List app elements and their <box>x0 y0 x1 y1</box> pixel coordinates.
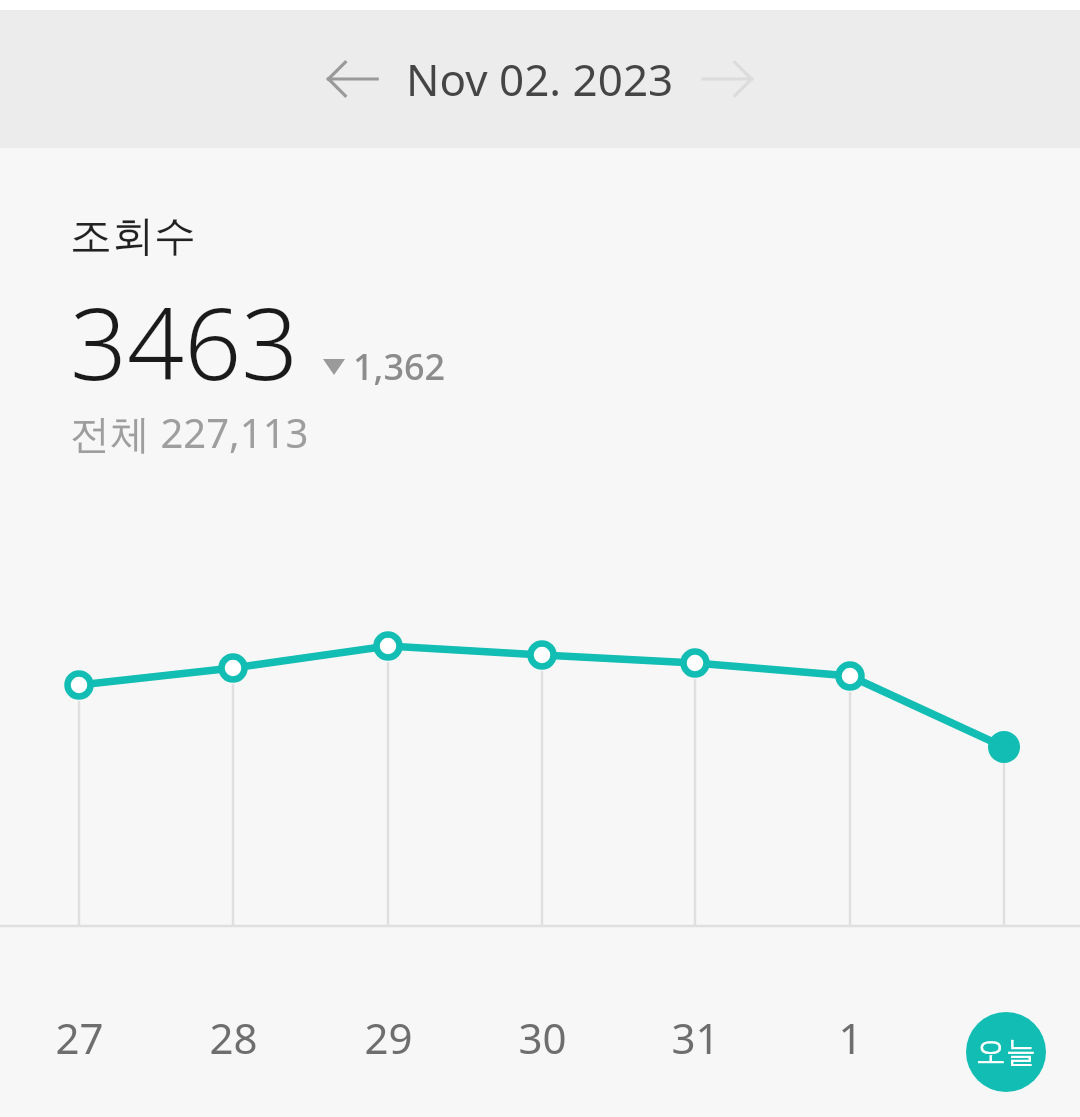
button[interactable]: Previous day <box>312 39 392 119</box>
button[interactable]: Next day <box>688 39 768 119</box>
button[interactable]: 27 <box>24 1002 134 1072</box>
button[interactable]: 오늘 <box>966 1012 1046 1092</box>
button[interactable]: 1 <box>795 1002 905 1072</box>
staticText: 1 <box>838 1009 863 1066</box>
staticText: Nov 02. 2023 <box>406 49 674 109</box>
staticText: 3463 <box>70 273 299 409</box>
staticText: 28 <box>209 1009 258 1066</box>
staticText: 27 <box>55 1009 104 1066</box>
button[interactable]: 30 <box>487 1002 597 1072</box>
button[interactable]: 31 <box>640 1002 750 1072</box>
button[interactable]: Nov 02. 2023 <box>406 49 674 109</box>
staticText: 29 <box>364 1009 413 1066</box>
button[interactable]: 28 <box>178 1002 288 1072</box>
staticText: 31 <box>671 1009 720 1066</box>
staticText: 1,362 <box>353 342 446 391</box>
staticText: 전체 227,113 <box>70 405 309 460</box>
button[interactable]: 29 <box>333 1002 443 1072</box>
staticText: 오늘 <box>976 1033 1036 1071</box>
staticText: 30 <box>518 1009 567 1066</box>
staticText: 조회수 <box>70 210 196 263</box>
